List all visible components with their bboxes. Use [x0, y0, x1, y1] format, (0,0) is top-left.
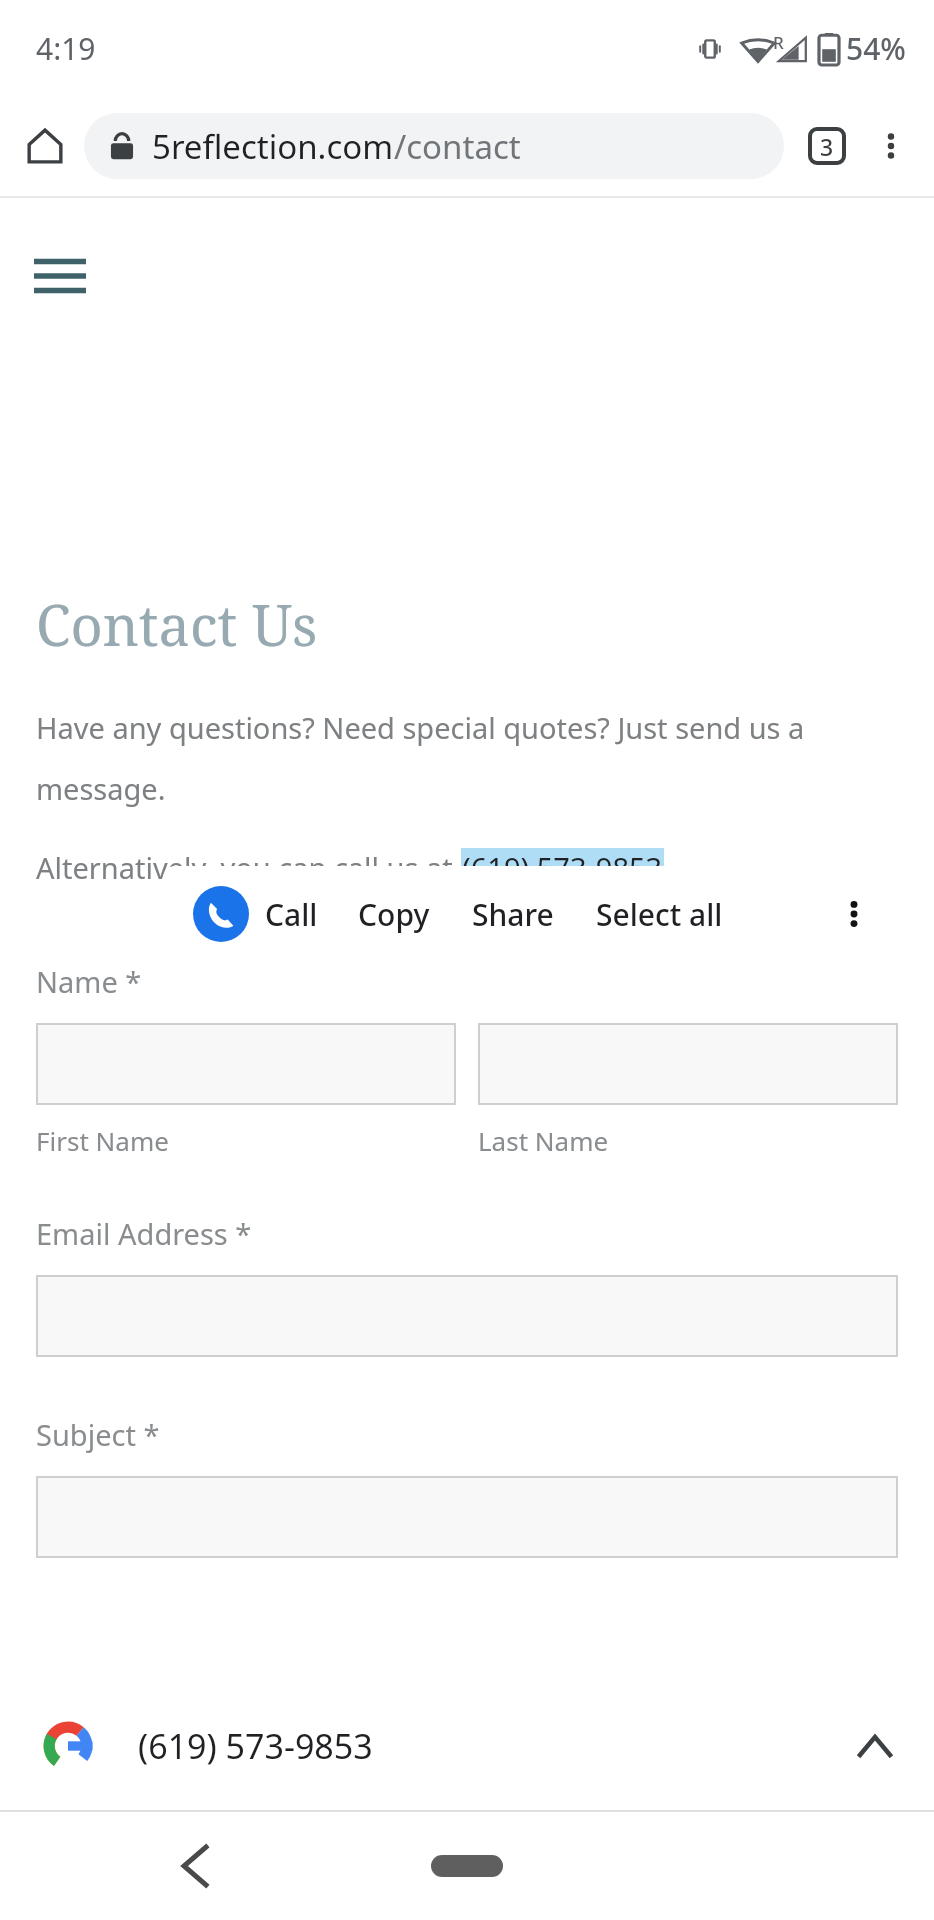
staticText: Last Name	[478, 1123, 898, 1158]
button[interactable]: (619) 573-9853	[0, 1681, 934, 1810]
button[interactable]: Open menu	[34, 248, 104, 304]
button[interactable]: More options	[858, 113, 924, 179]
button[interactable]	[36, 1275, 898, 1357]
staticText: Call	[265, 894, 318, 935]
staticText: First Name	[36, 1123, 456, 1158]
button[interactable]	[36, 1023, 456, 1105]
staticText: 54%	[846, 28, 906, 69]
staticText: /contact	[394, 124, 521, 169]
staticText: Share	[472, 894, 554, 935]
button[interactable]: 5reflection.com	[84, 113, 784, 179]
button[interactable]: (619) 573-9853	[462, 848, 663, 887]
staticText: Contact Us	[36, 586, 318, 662]
staticText: Select all	[596, 894, 723, 935]
button[interactable]: Switch tabs, 3 open	[796, 115, 858, 177]
button[interactable]	[478, 1023, 898, 1105]
staticText: Email Address *	[36, 1214, 252, 1253]
staticText: (619) 573-9853	[462, 848, 663, 887]
staticText: Have any questions? Need special quotes?…	[36, 708, 805, 747]
staticText: R	[773, 31, 784, 54]
button[interactable]: Expand suggestions	[840, 1711, 910, 1781]
staticText: Subject *	[36, 1415, 160, 1454]
staticText: 5reflection.com	[152, 124, 394, 169]
staticText: (619) 573-9853	[138, 1723, 373, 1769]
button[interactable]: Select all	[590, 884, 729, 945]
button[interactable]: Home	[14, 115, 76, 177]
button[interactable]: Copy	[352, 884, 436, 945]
button[interactable]	[36, 1476, 898, 1558]
button[interactable]: Back	[160, 1831, 230, 1901]
staticText: 4:19	[36, 28, 96, 69]
staticText: message.	[36, 769, 166, 808]
button[interactable]: Home gesture	[431, 1855, 503, 1877]
staticText: Alternatively, you can call us at	[36, 848, 461, 887]
staticText: Copy	[358, 894, 430, 935]
button[interactable]: More selection options	[822, 882, 886, 946]
staticText: Name *	[36, 962, 142, 1001]
button[interactable]: Share	[466, 884, 560, 945]
staticText: 3	[820, 131, 834, 162]
button[interactable]: Call	[189, 880, 322, 948]
